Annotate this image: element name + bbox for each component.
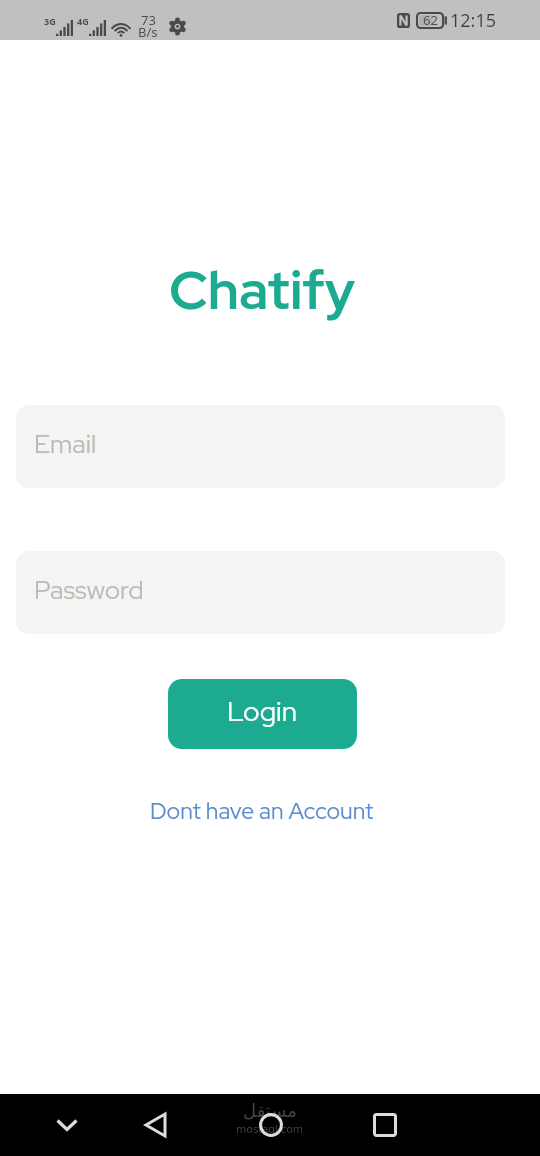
staticText: مستقل: [243, 1100, 297, 1121]
staticText: B/s: [138, 23, 158, 41]
staticText: 3G: [44, 15, 56, 27]
staticText: 62: [423, 11, 438, 29]
button[interactable]: Email: [16, 405, 505, 488]
button[interactable]: Dont have an Account: [142, 792, 382, 830]
staticText: Chatify: [0, 254, 532, 325]
staticText: Login: [227, 692, 298, 729]
button[interactable]: Password: [16, 551, 505, 634]
button[interactable]: Back: [124, 1094, 186, 1156]
staticText: 73: [141, 11, 156, 29]
button[interactable]: Login: [168, 679, 357, 749]
staticText: 12:15: [450, 8, 497, 33]
staticText: mostaql.com: [236, 1121, 304, 1136]
staticText: Dont have an Account: [150, 796, 374, 826]
button[interactable]: Hide keyboard: [36, 1094, 98, 1156]
staticText: Password: [34, 573, 144, 607]
staticText: Email: [34, 427, 97, 461]
button[interactable]: Recent apps: [354, 1094, 416, 1156]
staticText: 4G: [77, 15, 89, 27]
button[interactable]: Home: [240, 1094, 302, 1156]
